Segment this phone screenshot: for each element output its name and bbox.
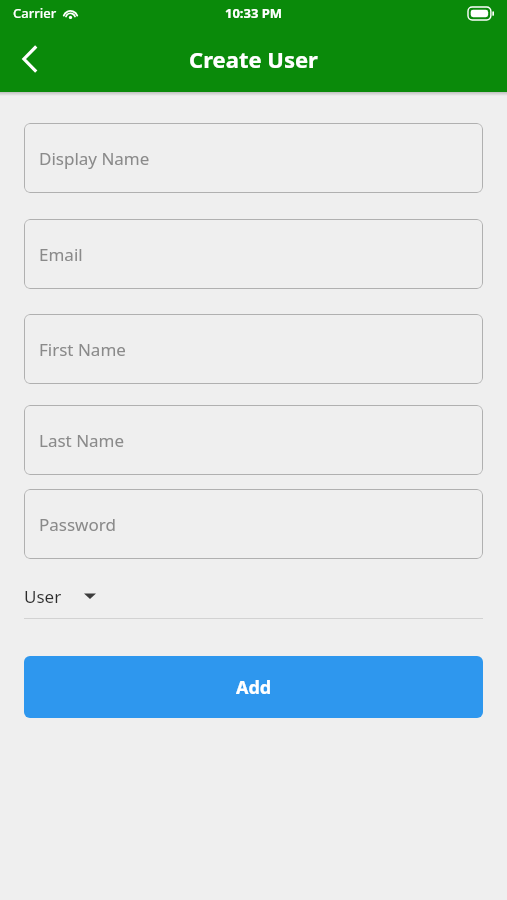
- staticText: First Name: [39, 338, 126, 361]
- staticText: Display Name: [39, 147, 150, 170]
- button[interactable]: Add: [24, 656, 483, 718]
- button[interactable]: Last Name: [24, 405, 483, 475]
- button[interactable]: Email: [24, 219, 483, 289]
- staticText: Carrier: [13, 4, 57, 22]
- button[interactable]: Display Name: [24, 123, 483, 193]
- staticText: Create User: [189, 44, 318, 74]
- button[interactable]: First Name: [24, 314, 483, 384]
- staticText: 10:33 PM: [225, 4, 283, 22]
- button[interactable]: Back: [8, 37, 52, 81]
- staticText: Last Name: [39, 429, 125, 452]
- staticText: Email: [39, 243, 83, 266]
- staticText: Add: [236, 675, 272, 700]
- staticText: User: [24, 585, 62, 608]
- button[interactable]: User: [24, 581, 483, 611]
- button[interactable]: Password: [24, 489, 483, 559]
- staticText: Password: [39, 513, 116, 536]
